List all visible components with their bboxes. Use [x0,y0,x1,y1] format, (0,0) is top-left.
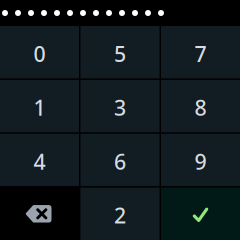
staticText: 3 [114,93,126,122]
button[interactable]: Delete [0,188,79,240]
staticText: 8 [194,93,206,122]
button[interactable]: 1 [0,80,79,132]
staticText: 6 [114,147,126,176]
button[interactable]: 6 [80,134,159,186]
staticText: 4 [33,147,45,176]
staticText: 2 [114,201,126,229]
staticText: 5 [114,39,126,68]
button[interactable]: 5 [80,26,159,78]
staticText: 7 [194,39,206,68]
button[interactable]: 9 [161,134,240,186]
button[interactable]: 0 [0,26,79,78]
button[interactable]: 7 [161,26,240,78]
staticText: 1 [33,93,45,122]
button[interactable]: Confirm [161,188,240,240]
staticText: 0 [33,39,45,68]
staticText: 9 [194,147,206,176]
button[interactable]: 3 [80,80,159,132]
button[interactable]: 4 [0,134,79,186]
button[interactable]: 8 [161,80,240,132]
button[interactable]: 2 [80,188,159,240]
